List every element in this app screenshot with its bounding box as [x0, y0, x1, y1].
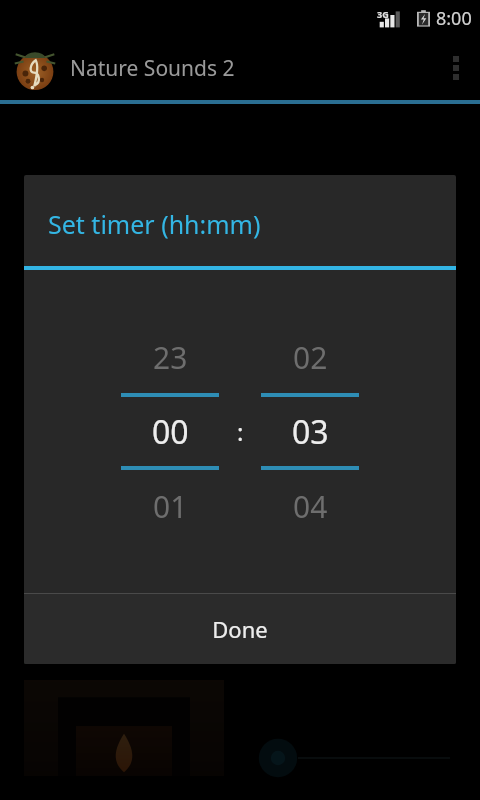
staticText: 00 [152, 410, 189, 454]
staticText: : [237, 415, 244, 448]
staticText: 04 [293, 486, 328, 527]
button[interactable]: Done [24, 594, 456, 664]
staticText: 02 [293, 337, 328, 378]
button[interactable]: 01 [121, 470, 219, 542]
button[interactable]: 03 [261, 397, 359, 466]
button[interactable]: 04 [261, 470, 359, 542]
button[interactable]: 00 [121, 397, 219, 466]
staticText: 3G [377, 8, 389, 20]
button[interactable]: 02 [261, 321, 359, 393]
button[interactable]: 23 [121, 321, 219, 393]
staticText: 8:00 [436, 6, 472, 31]
staticText: 01 [153, 486, 188, 527]
staticText: 03 [292, 410, 329, 454]
staticText: Done [212, 614, 268, 644]
staticText: 23 [153, 337, 188, 378]
staticText: Nature Sounds 2 [70, 54, 235, 83]
button[interactable]: More options [432, 36, 480, 100]
staticText: Set timer (hh:mm) [48, 207, 261, 241]
